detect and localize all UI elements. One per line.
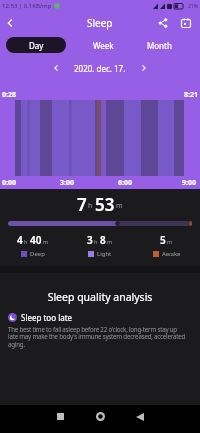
staticText: Light <box>97 250 112 258</box>
staticText: 21% <box>188 3 198 10</box>
staticText: Day <box>29 40 44 51</box>
staticText: 8 <box>100 233 106 246</box>
button[interactable] <box>155 12 171 34</box>
staticText: 7 <box>77 193 87 213</box>
button[interactable]: Week <box>86 34 120 56</box>
staticText: Sleep too late <box>21 312 73 323</box>
staticText: h <box>94 238 98 245</box>
staticText: 5 <box>160 233 166 246</box>
staticText: 8:21 <box>184 90 198 100</box>
staticText: The best time to fall asleep before 22 o… <box>8 325 192 349</box>
staticText: Sleep <box>87 16 113 30</box>
button[interactable] <box>0 12 20 34</box>
staticText: 40 <box>30 233 42 246</box>
staticText: 0:00 <box>2 178 16 188</box>
staticText: Month <box>147 40 172 51</box>
staticText: Week <box>93 40 114 51</box>
staticText: Awake <box>162 250 181 258</box>
staticText: h <box>88 201 93 211</box>
staticText: 53 <box>95 193 115 213</box>
button[interactable]: Day <box>6 37 66 53</box>
staticText: 3 <box>87 233 93 246</box>
button[interactable] <box>84 405 116 428</box>
staticText: m <box>107 238 113 245</box>
staticText: 0:28 <box>2 90 16 100</box>
staticText: Sleep quality analysis <box>0 290 200 304</box>
staticText: 12:53 | 0.1KB/mp <box>2 2 52 10</box>
staticText: 6:00 <box>118 178 132 188</box>
staticText: 9:00 <box>182 178 196 188</box>
staticText: 4 <box>17 233 23 246</box>
staticText: m <box>116 201 123 211</box>
button[interactable] <box>44 405 76 428</box>
button[interactable] <box>178 12 194 34</box>
staticText: Deep <box>30 250 45 258</box>
button[interactable]: Month <box>140 34 178 56</box>
button[interactable]: Sleep too late <box>8 312 192 323</box>
staticText: 3:00 <box>60 178 74 188</box>
button[interactable] <box>136 60 152 76</box>
staticText: 2020. dec. 17. <box>74 63 126 74</box>
staticText: m <box>167 238 173 245</box>
staticText: h <box>24 238 28 245</box>
staticText: m <box>43 238 49 245</box>
button[interactable] <box>48 60 64 76</box>
button[interactable] <box>124 405 156 428</box>
